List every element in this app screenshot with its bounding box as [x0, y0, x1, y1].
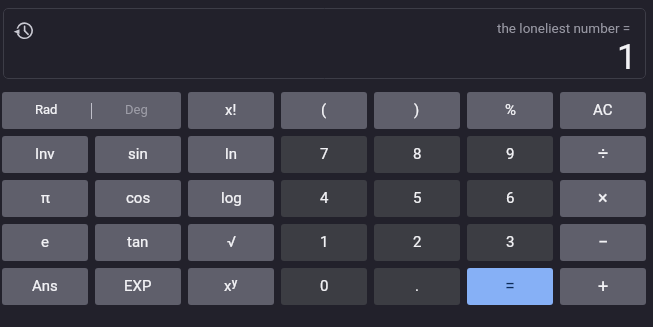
staticText: tan: [127, 233, 149, 251]
staticText: Rad: [35, 102, 58, 117]
staticText: Deg: [125, 102, 148, 117]
button[interactable]: ÷: [560, 136, 646, 173]
staticText: e: [41, 233, 49, 251]
button[interactable]: ): [374, 92, 460, 129]
staticText: 8: [413, 145, 422, 163]
button[interactable]: π: [2, 180, 88, 217]
button[interactable]: 8: [374, 136, 460, 173]
staticText: −: [598, 231, 609, 252]
staticText: EXP: [124, 277, 152, 295]
staticText: AC: [593, 101, 613, 119]
staticText: 3: [506, 233, 515, 251]
button[interactable]: 7: [281, 136, 367, 173]
staticText: the loneliest number =: [497, 20, 631, 36]
button[interactable]: 3: [467, 224, 553, 261]
staticText: Ans: [32, 277, 58, 295]
button[interactable]: 1: [281, 224, 367, 261]
button[interactable]: EXP: [95, 268, 181, 305]
button[interactable]: √: [188, 224, 274, 261]
button[interactable]: History: [9, 16, 37, 44]
staticText: ×: [598, 187, 608, 208]
button[interactable]: sin: [95, 136, 181, 173]
staticText: x!: [225, 101, 237, 119]
button[interactable]: (: [281, 92, 367, 129]
button[interactable]: log: [188, 180, 274, 217]
staticText: 7: [320, 145, 329, 163]
button[interactable]: .: [374, 268, 460, 305]
button[interactable]: Rad: [2, 92, 181, 129]
staticText: ÷: [598, 143, 609, 164]
staticText: ): [414, 101, 420, 119]
staticText: π: [41, 189, 50, 207]
button[interactable]: tan: [95, 224, 181, 261]
button[interactable]: xʸ: [188, 268, 274, 305]
staticText: sin: [128, 145, 148, 163]
staticText: ln: [225, 145, 237, 163]
staticText: =: [505, 275, 515, 296]
staticText: 0: [320, 277, 329, 295]
button[interactable]: 6: [467, 180, 553, 217]
button[interactable]: ln: [188, 136, 274, 173]
button[interactable]: AC: [560, 92, 646, 129]
staticText: .: [415, 277, 419, 295]
button[interactable]: %: [467, 92, 553, 129]
staticText: 6: [506, 189, 515, 207]
button[interactable]: 9: [467, 136, 553, 173]
staticText: cos: [126, 189, 151, 207]
staticText: 9: [506, 145, 515, 163]
staticText: xʸ: [224, 277, 238, 295]
staticText: (: [321, 101, 327, 119]
staticText: 4: [320, 189, 329, 207]
staticText: 5: [413, 189, 422, 207]
staticText: %: [505, 101, 516, 119]
button[interactable]: 2: [374, 224, 460, 261]
staticText: log: [221, 189, 242, 207]
button[interactable]: −: [560, 224, 646, 261]
button[interactable]: cos: [95, 180, 181, 217]
button[interactable]: 4: [281, 180, 367, 217]
staticText: +: [598, 275, 609, 296]
button[interactable]: Inv: [2, 136, 88, 173]
staticText: 1: [617, 37, 637, 78]
button[interactable]: 5: [374, 180, 460, 217]
staticText: 2: [413, 233, 422, 251]
staticText: √: [227, 233, 236, 251]
staticText: Inv: [35, 145, 55, 163]
button[interactable]: x!: [188, 92, 274, 129]
button[interactable]: ×: [560, 180, 646, 217]
staticText: 1: [320, 233, 329, 251]
button[interactable]: Ans: [2, 268, 88, 305]
button[interactable]: e: [2, 224, 88, 261]
button[interactable]: 0: [281, 268, 367, 305]
button[interactable]: =: [467, 268, 553, 305]
button[interactable]: +: [560, 268, 646, 305]
